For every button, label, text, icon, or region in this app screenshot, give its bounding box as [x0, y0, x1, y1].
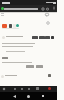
- button[interactable]: Underline: [45, 36, 50, 39]
- button[interactable]: Erase: [27, 87, 31, 91]
- button[interactable]: Text box: [36, 87, 39, 90]
- button[interactable]: Decline: [26, 65, 34, 68]
- button[interactable]: More formatting: [51, 36, 54, 39]
- button[interactable]: Account avatar: [1, 7, 4, 10]
- button[interactable]: Draw: [13, 87, 17, 91]
- button[interactable]: Comment: [45, 13, 49, 17]
- button[interactable]: Attach: [48, 74, 51, 77]
- button[interactable]: More options: [52, 6, 56, 10]
- button[interactable]: Italic: [39, 36, 45, 39]
- button[interactable]: Highlight: [20, 87, 24, 91]
- button[interactable]: Recents: [38, 92, 47, 100]
- button[interactable]: Accept: [36, 65, 43, 68]
- button[interactable]: Add: [2, 87, 6, 91]
- button[interactable]: Video call: [46, 7, 50, 11]
- button[interactable]: Record: [48, 87, 51, 90]
- button[interactable]: Home: [24, 92, 33, 100]
- button[interactable]: Bold: [32, 36, 38, 39]
- button[interactable]: Back: [10, 92, 19, 100]
- button[interactable]: Attach file: [2, 24, 7, 28]
- button[interactable]: Attachment: [46, 21, 50, 25]
- button[interactable]: Camera: [9, 24, 12, 28]
- button[interactable]: Contact: [16, 24, 19, 27]
- button[interactable]: Share: [41, 7, 45, 11]
